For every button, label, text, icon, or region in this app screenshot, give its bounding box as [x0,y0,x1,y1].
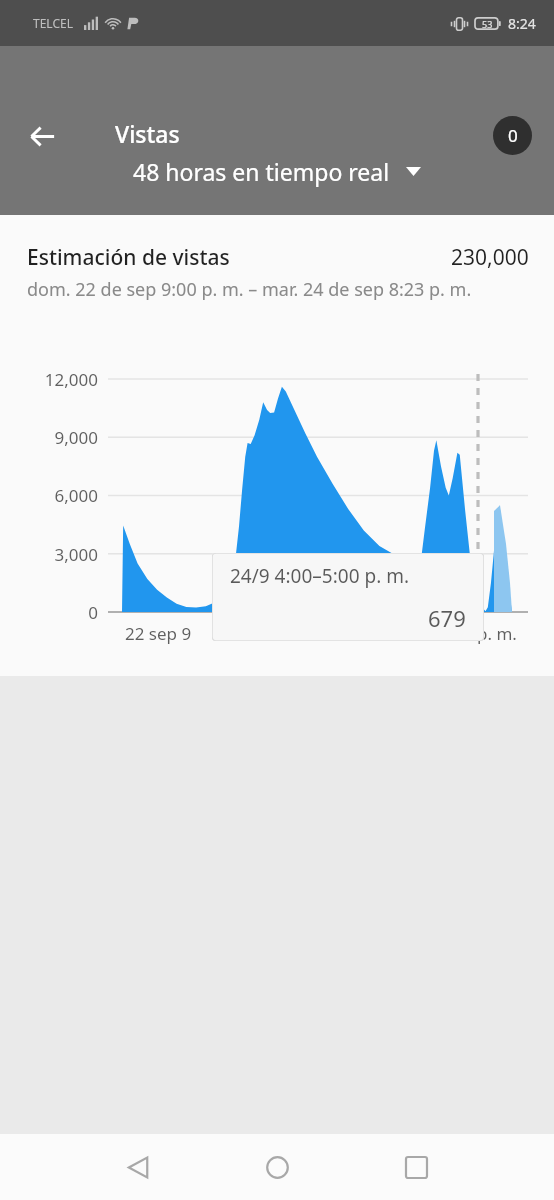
staticText: 48 horas en tiempo real [133,156,390,187]
staticText: p. m. [477,622,517,645]
staticText: 8:24 [508,14,536,33]
staticText: 24/9 4:00–5:00 p. m. [230,563,410,589]
button[interactable]: Back [14,108,70,164]
staticText: Estimación de vistas [27,243,230,272]
staticText: 3,000 [54,543,98,566]
button[interactable]: Home [249,1139,305,1195]
staticText: 6,000 [54,484,98,507]
staticText: Vistas [115,118,180,149]
staticText: TELCEL [33,15,73,31]
staticText: 679 [428,603,466,633]
staticText: dom. 22 de sep 9:00 p. m. – mar. 24 de s… [27,277,472,302]
staticText: 0 [88,601,98,624]
staticText: 22 sep 9 [125,622,192,645]
staticText: 12,000 [44,368,98,391]
staticText: 0 [508,124,518,147]
staticText: 230,000 [451,243,529,272]
button[interactable]: 24/9 4:00–5:00 p. m. [212,553,484,641]
button[interactable]: Recents [388,1139,444,1195]
staticText: 9,000 [54,426,98,449]
button[interactable]: Back [110,1139,166,1195]
staticText: 53 [482,18,493,30]
button[interactable]: 48 horas en tiempo real [127,152,427,191]
button[interactable]: 0 [493,116,532,155]
